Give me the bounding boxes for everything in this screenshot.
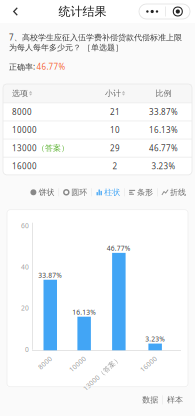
staticText: 10000	[65, 353, 85, 362]
staticText: 46.77%	[107, 244, 131, 253]
button[interactable]: More options	[139, 4, 190, 19]
staticText: 16000	[12, 161, 37, 171]
staticText: 60	[21, 221, 29, 230]
staticText: 折线	[170, 187, 186, 197]
button[interactable]: 数据	[138, 393, 162, 406]
staticText: 16.13%	[72, 308, 96, 317]
staticText: 统计结果	[58, 4, 106, 19]
staticText: 数据	[142, 395, 158, 405]
staticText: 33.87%	[38, 271, 62, 280]
staticText: 正确率:	[9, 61, 35, 72]
staticText: 8000	[35, 353, 51, 362]
staticText: 10000	[12, 125, 37, 135]
staticText: 选项	[12, 88, 28, 98]
staticText: 比例	[155, 88, 171, 98]
staticText: 13000	[12, 143, 37, 153]
button[interactable]: 柱状	[92, 185, 124, 199]
staticText: 13000（答案）	[72, 353, 120, 362]
staticText: 柱状	[104, 187, 120, 197]
staticText: 0	[25, 345, 29, 354]
staticText: 16000	[136, 353, 156, 362]
button[interactable]: 样本	[163, 393, 187, 406]
staticText: 3.23%	[151, 161, 175, 171]
staticText: 33.87%	[149, 107, 178, 117]
staticText: 16.13%	[149, 125, 178, 135]
staticText: 3.23%	[145, 334, 165, 343]
staticText: 7、高校学生应征入伍学费补偿贷款代偿标准上限为每人每年多少元？ ［单选题］	[9, 32, 182, 52]
staticText: （答案）	[37, 143, 69, 153]
staticText: 46.77%	[149, 143, 178, 153]
button[interactable]: 圆环	[59, 185, 91, 199]
staticText: 20	[21, 303, 29, 312]
staticText: 圆环	[71, 187, 87, 197]
staticText: 2	[112, 161, 117, 171]
staticText: 46.77%	[36, 61, 65, 72]
button[interactable]: 条形	[125, 185, 157, 199]
staticText: 40	[21, 262, 29, 271]
staticText: 29	[110, 143, 120, 153]
button[interactable]: 饼状	[26, 185, 58, 199]
staticText: 8000	[12, 107, 32, 117]
button[interactable]: 小计	[95, 84, 135, 102]
staticText: 样本	[167, 395, 183, 405]
staticText: 小计	[105, 88, 121, 98]
staticText: 条形	[137, 187, 153, 197]
staticText: 饼状	[38, 187, 54, 197]
button[interactable]: 折线	[158, 185, 190, 199]
staticText: 21	[110, 107, 120, 117]
staticText: 10	[110, 125, 120, 135]
button[interactable]: Back	[5, 0, 26, 23]
button[interactable]: 选项	[3, 84, 95, 102]
